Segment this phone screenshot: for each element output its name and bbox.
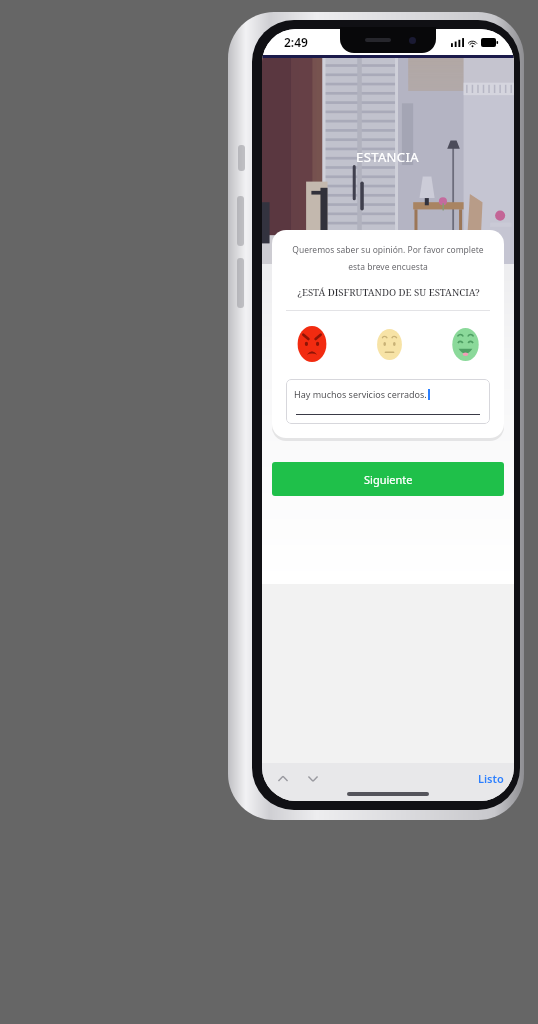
staticText: Listo bbox=[478, 771, 504, 786]
button[interactable]: Rate neutral bbox=[370, 325, 409, 364]
button[interactable]: Previous field bbox=[274, 770, 292, 788]
button[interactable]: Hay muchos servicios cerrados. bbox=[286, 379, 490, 424]
button[interactable]: Siguiente bbox=[272, 462, 504, 496]
button[interactable]: Rate unhappy bbox=[290, 322, 334, 366]
staticText: Queremos saber su opinión. Por favor com… bbox=[290, 244, 486, 272]
staticText: ¿ESTÁ DISFRUTANDO DE SU ESTANCIA? bbox=[297, 286, 480, 299]
button[interactable]: Rate happy bbox=[445, 324, 486, 365]
staticText: 2:49 bbox=[284, 34, 308, 50]
staticText: ESTANCIA bbox=[356, 148, 420, 166]
button[interactable]: Listo bbox=[478, 771, 504, 786]
button[interactable]: Next field bbox=[304, 770, 322, 788]
staticText: Siguiente bbox=[364, 472, 413, 487]
staticText: Hay muchos servicios cerrados. bbox=[294, 388, 427, 400]
